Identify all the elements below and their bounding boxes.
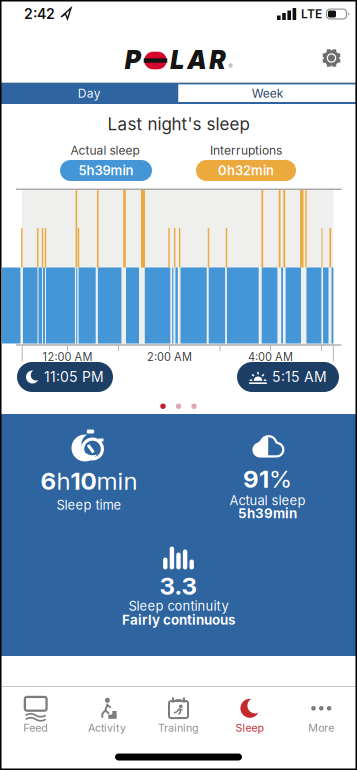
button[interactable]: 5:15 AM: [237, 362, 339, 392]
button[interactable]: Feed: [0, 687, 71, 735]
staticText: Week: [252, 86, 284, 101]
staticText: LTE: [301, 7, 322, 21]
staticText: 0h32min: [218, 163, 274, 178]
staticText: Actual sleep: [70, 143, 139, 158]
staticText: Activity: [88, 721, 126, 734]
staticText: 12:00 AM: [42, 350, 92, 364]
button[interactable]: Settings: [322, 48, 357, 67]
button[interactable]: Week: [178, 83, 357, 104]
staticText: 2:42: [24, 5, 55, 22]
staticText: Training: [158, 721, 199, 734]
staticText: ®: [228, 62, 232, 70]
staticText: Actual sleep: [229, 493, 305, 508]
staticText: P: [125, 45, 141, 75]
staticText: Fairly continuous: [122, 612, 235, 628]
staticText: 3.3: [159, 571, 197, 601]
button[interactable]: Sleep: [214, 687, 286, 735]
staticText: A: [187, 45, 206, 75]
staticText: 5:15 AM: [272, 368, 327, 385]
staticText: 4:00 AM: [248, 350, 293, 364]
button[interactable]: Training: [143, 687, 214, 735]
staticText: R: [209, 45, 225, 75]
button[interactable]: Day: [0, 83, 178, 104]
staticText: Sleep: [235, 721, 264, 734]
staticText: Feed: [23, 721, 48, 734]
button[interactable]: More: [286, 687, 357, 735]
staticText: Sleep time: [56, 497, 121, 513]
staticText: 6h10min: [40, 467, 137, 495]
staticText: 91%: [243, 465, 292, 493]
staticText: Last night's sleep: [107, 114, 249, 134]
staticText: 2:00 AM: [147, 350, 192, 364]
staticText: More: [308, 721, 334, 734]
button[interactable]: Activity: [71, 687, 143, 735]
staticText: L: [170, 45, 184, 75]
staticText: 5h39min: [78, 163, 133, 178]
button[interactable]: 11:05 PM: [17, 362, 113, 392]
staticText: Day: [78, 86, 101, 101]
staticText: Interruptions: [210, 143, 282, 158]
staticText: Sleep continuity: [128, 598, 228, 614]
staticText: 11:05 PM: [44, 368, 104, 385]
staticText: 5h39min: [238, 505, 297, 521]
